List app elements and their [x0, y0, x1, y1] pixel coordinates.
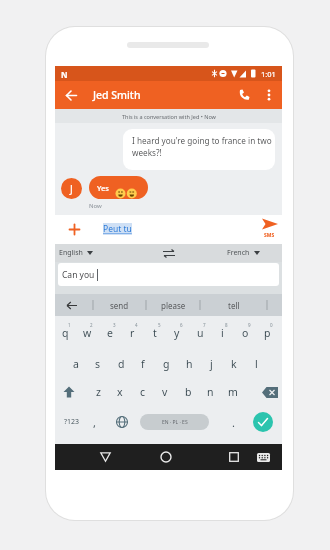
staticText: c: [140, 385, 146, 399]
staticText: 7: [203, 322, 206, 328]
staticText: ,: [93, 415, 96, 430]
staticText: g: [163, 357, 170, 371]
staticText: z: [96, 385, 101, 399]
button[interactable]: Yes: [89, 176, 148, 199]
staticText: m: [228, 385, 238, 399]
button[interactable]: I heard you're going to france in two we…: [123, 129, 275, 170]
staticText: k: [231, 357, 237, 371]
button[interactable]: c: [132, 378, 154, 406]
button[interactable]: j: [200, 350, 222, 378]
button[interactable]: Can you: [58, 263, 279, 286]
button[interactable]: tell: [200, 294, 267, 316]
button[interactable]: [63, 386, 75, 398]
staticText: EN · PL · ES: [162, 419, 188, 426]
staticText: d: [118, 357, 125, 371]
button[interactable]: b: [177, 378, 199, 406]
button[interactable]: [66, 301, 78, 310]
button[interactable]: [160, 451, 172, 463]
staticText: r: [130, 326, 135, 340]
button[interactable]: g: [155, 350, 177, 378]
staticText: 3: [113, 322, 116, 328]
button[interactable]: v: [154, 378, 176, 406]
button[interactable]: r: [121, 319, 143, 347]
staticText: o: [242, 326, 249, 340]
button[interactable]: y: [166, 319, 188, 347]
staticText: Now: [89, 202, 102, 210]
button[interactable]: z: [87, 378, 109, 406]
button[interactable]: send: [93, 294, 146, 316]
staticText: y: [174, 326, 180, 340]
button[interactable]: u: [189, 319, 211, 347]
button[interactable]: SMS: [260, 217, 280, 241]
staticText: French: [227, 248, 250, 258]
button[interactable]: [257, 453, 270, 462]
button[interactable]: m: [222, 378, 244, 406]
button[interactable]: .: [225, 408, 242, 436]
staticText: b: [185, 385, 192, 399]
button[interactable]: please: [146, 294, 200, 316]
staticText: e: [107, 326, 113, 340]
button[interactable]: t: [144, 319, 166, 347]
button[interactable]: [262, 387, 278, 398]
button[interactable]: x: [109, 378, 131, 406]
button[interactable]: l: [245, 350, 267, 378]
staticText: f: [141, 357, 145, 371]
button[interactable]: s: [87, 350, 109, 378]
staticText: p: [264, 326, 271, 340]
staticText: 1: [68, 322, 71, 328]
staticText: 1:01: [261, 69, 276, 79]
button[interactable]: ,: [86, 408, 103, 436]
staticText: Yes: [97, 183, 109, 193]
staticText: I heard you're going to france in two we…: [132, 135, 272, 158]
button[interactable]: [162, 249, 176, 258]
staticText: ?123: [64, 417, 80, 427]
staticText: w: [83, 326, 92, 340]
button[interactable]: [116, 416, 128, 428]
button[interactable]: i: [211, 319, 233, 347]
button[interactable]: French: [227, 244, 260, 262]
button[interactable]: w: [76, 319, 98, 347]
staticText: please: [161, 300, 186, 311]
button[interactable]: f: [132, 350, 154, 378]
staticText: t: [153, 326, 157, 340]
button[interactable]: [264, 89, 274, 101]
staticText: 6: [180, 322, 183, 328]
staticText: v: [162, 385, 168, 399]
button[interactable]: p: [256, 319, 278, 347]
button[interactable]: o: [234, 319, 256, 347]
button[interactable]: English: [59, 244, 93, 262]
staticText: N: [61, 69, 68, 80]
button[interactable]: ?123: [58, 408, 86, 436]
button[interactable]: k: [223, 350, 245, 378]
staticText: i: [221, 326, 224, 340]
staticText: u: [197, 326, 204, 340]
button[interactable]: d: [110, 350, 132, 378]
staticText: Can you: [62, 269, 97, 281]
staticText: J: [70, 182, 73, 196]
button[interactable]: [100, 452, 111, 462]
button[interactable]: h: [178, 350, 200, 378]
staticText: Peut tu: [103, 223, 132, 235]
button[interactable]: [253, 412, 273, 432]
staticText: h: [186, 357, 193, 371]
button[interactable]: a: [65, 350, 87, 378]
staticText: This is a conversation with Jed • Now: [122, 113, 216, 120]
button[interactable]: n: [199, 378, 221, 406]
staticText: 2: [90, 322, 93, 328]
button[interactable]: [238, 89, 250, 101]
staticText: Jed Smith: [93, 88, 141, 102]
staticText: j: [210, 357, 213, 371]
staticText: s: [95, 357, 101, 371]
staticText: send: [110, 300, 129, 311]
staticText: 0: [270, 322, 273, 328]
staticText: l: [255, 357, 258, 371]
staticText: 4: [135, 322, 138, 328]
button[interactable]: e: [99, 319, 121, 347]
button[interactable]: [69, 224, 80, 235]
button[interactable]: [229, 452, 239, 462]
staticText: n: [207, 385, 214, 399]
button[interactable]: EN · PL · ES: [140, 414, 209, 430]
staticText: SMS: [264, 232, 275, 239]
button[interactable]: [66, 90, 77, 101]
button[interactable]: q: [54, 319, 76, 347]
